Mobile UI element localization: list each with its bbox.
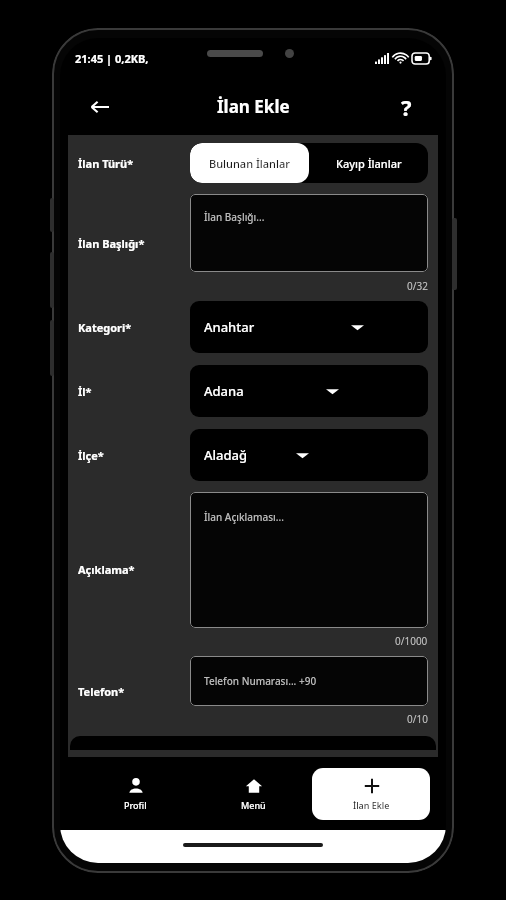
staticText: Aladağ [204, 446, 248, 464]
staticText: İlan Ekle [353, 799, 390, 811]
button[interactable]: Help [388, 89, 424, 125]
staticText: 0/10 [407, 712, 428, 726]
button[interactable]: Kayıp İlanlar [309, 143, 428, 183]
button[interactable]: İlan Ekle [312, 768, 430, 820]
staticText: İlan Türü* [78, 156, 134, 171]
staticText: ? [401, 92, 412, 122]
staticText: Profil [124, 799, 147, 811]
staticText: 21:45 | 0,2KB, [75, 51, 149, 66]
staticText: İlçe* [78, 448, 104, 463]
button[interactable]: Anahtar [190, 301, 428, 353]
button[interactable]: Profil [76, 768, 194, 820]
button[interactable]: İlan Açıklaması... [190, 492, 428, 628]
staticText: İlan Açıklaması... [204, 510, 284, 524]
staticText: 0/1000 [395, 634, 428, 648]
staticText: 0/32 [407, 279, 428, 293]
staticText: İlan Ekle [217, 95, 290, 118]
staticText: İlan Başlığı... [204, 210, 265, 224]
button[interactable]: İlan Başlığı... [190, 194, 428, 272]
staticText: Anahtar [204, 318, 255, 336]
staticText: İl* [78, 384, 92, 399]
button[interactable]: Back [82, 89, 118, 125]
staticText: Telefon Numarası... +90 [204, 674, 317, 688]
staticText: Açıklama* [78, 562, 135, 577]
button[interactable]: Bulunan İlanlar [190, 143, 309, 183]
staticText: Kategori* [78, 320, 132, 335]
button[interactable]: Aladağ [190, 429, 428, 481]
staticText: İlan Başlığı* [78, 236, 145, 251]
button[interactable]: Adana [190, 365, 428, 417]
staticText: Menü [241, 799, 266, 811]
staticText: Kayıp İlanlar [336, 156, 402, 171]
staticText: Bulunan İlanlar [209, 156, 290, 171]
staticText: Adana [204, 382, 244, 400]
staticText: Telefon* [78, 684, 125, 699]
button[interactable]: Telefon Numarası... +90 [190, 656, 428, 706]
button[interactable]: Menü [194, 768, 312, 820]
